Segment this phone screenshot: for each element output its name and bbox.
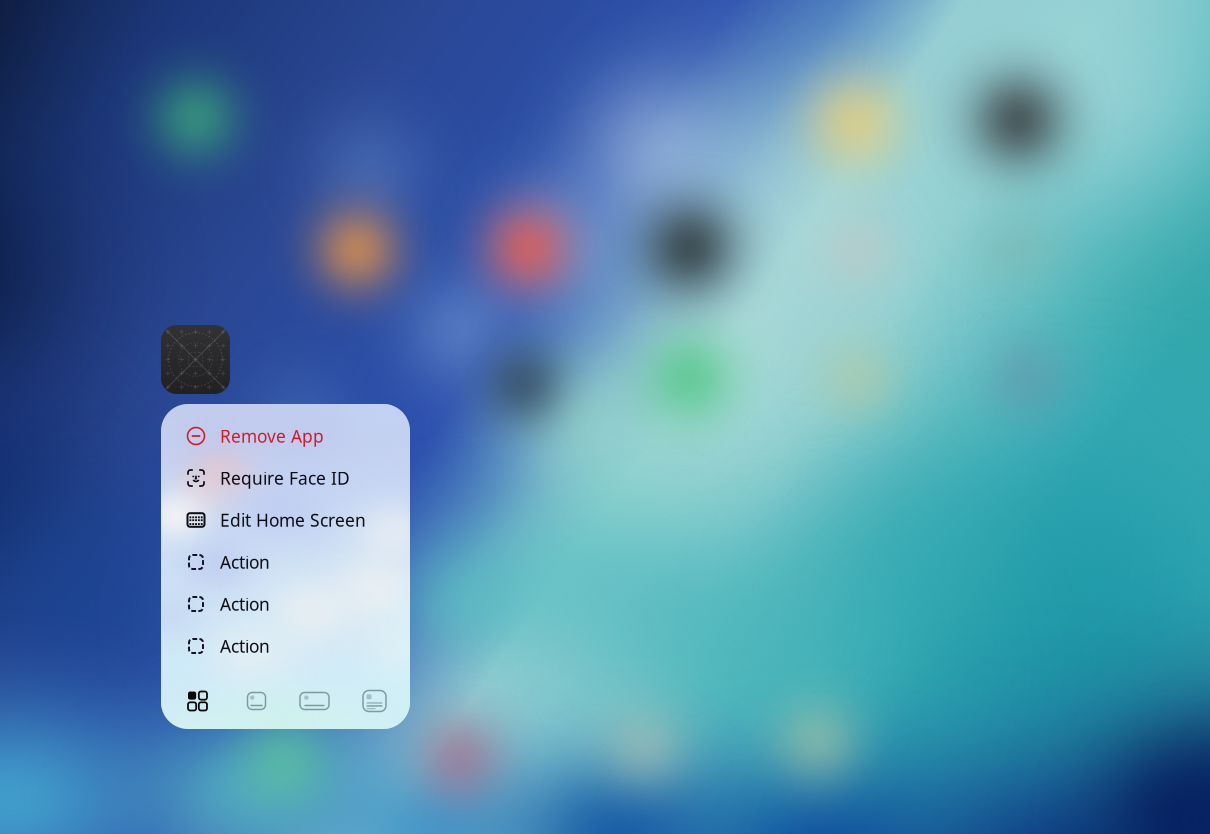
staticText: Action xyxy=(220,634,270,657)
button[interactable]: Action xyxy=(161,583,410,625)
staticText: Action xyxy=(220,592,270,615)
button[interactable]: Action xyxy=(161,625,410,667)
button[interactable]: Require Face ID xyxy=(161,457,410,499)
staticText: Edit Home Screen xyxy=(220,508,366,531)
button[interactable]: Action xyxy=(161,541,410,583)
button[interactable]: App icon size xyxy=(175,679,219,723)
button[interactable]: Edit Home Screen xyxy=(161,499,410,541)
button[interactable]: Large widget xyxy=(352,679,396,723)
button[interactable]: Medium widget xyxy=(292,679,336,723)
staticText: Remove App xyxy=(220,424,324,447)
button[interactable]: Remove App xyxy=(161,415,410,457)
staticText: Action xyxy=(220,550,270,573)
staticText: Require Face ID xyxy=(220,466,350,489)
button[interactable]: Small widget xyxy=(234,679,278,723)
